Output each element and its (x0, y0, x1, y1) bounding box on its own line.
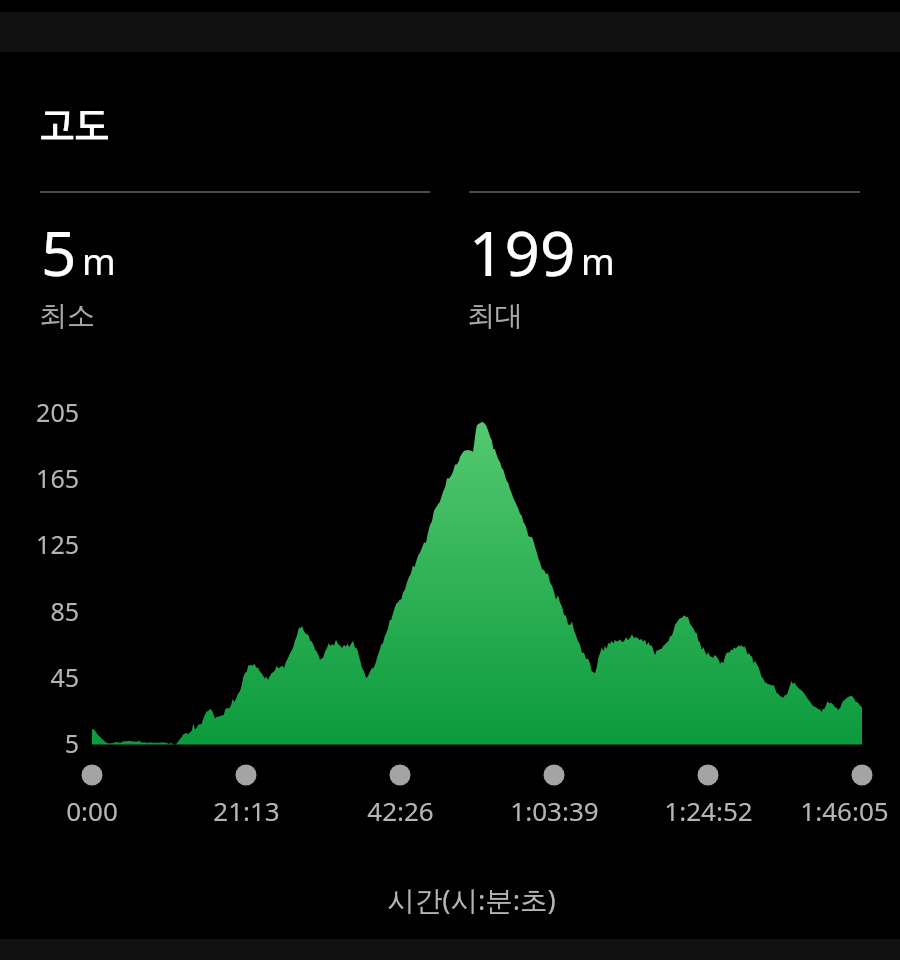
staticText: 1:03:39 (510, 793, 599, 828)
button[interactable]: 고도 (0, 78, 900, 158)
button[interactable]: 199 (468, 196, 859, 336)
staticText: 5 (64, 726, 79, 760)
staticText: 고도 (40, 97, 110, 156)
button[interactable]: Elevation graph (40, 380, 860, 790)
staticText: 42:26 (367, 793, 434, 828)
button[interactable]: 5 (40, 196, 431, 336)
staticText: 165 (36, 461, 79, 495)
staticText: 5 (41, 210, 77, 294)
staticText: 199 (469, 210, 576, 294)
staticText: 최소 (39, 298, 95, 333)
staticText: 1:24:52 (664, 793, 753, 828)
staticText: 125 (36, 527, 79, 561)
staticText: 시간(시:분:초) (387, 881, 556, 919)
staticText: 21:13 (213, 793, 280, 828)
staticText: 최대 (467, 298, 523, 333)
staticText: 85 (50, 594, 79, 628)
staticText: 1:46:05 (800, 793, 889, 828)
staticText: m (82, 237, 116, 286)
staticText: 45 (50, 660, 79, 694)
staticText: 205 (36, 395, 79, 429)
staticText: m (581, 237, 615, 286)
staticText: 0:00 (66, 793, 118, 828)
